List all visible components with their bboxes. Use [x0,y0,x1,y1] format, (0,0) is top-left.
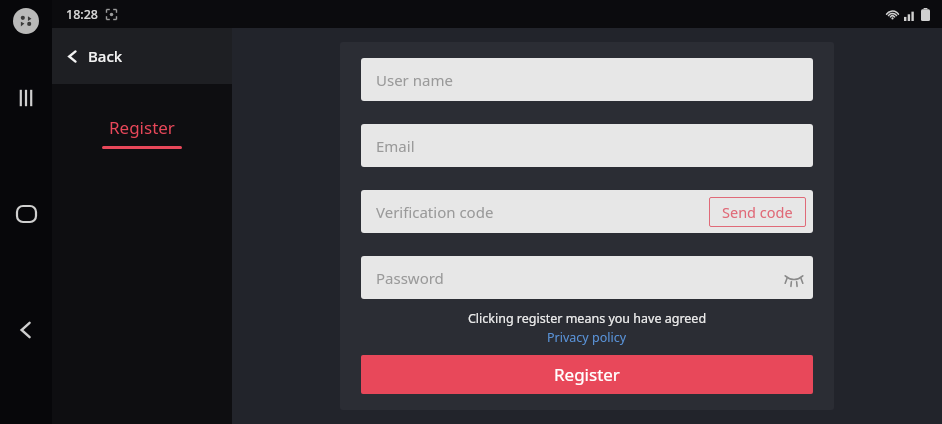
button[interactable]: Send code [709,197,806,227]
button[interactable]: Back [4,308,48,352]
staticText: Verification code [376,202,709,222]
staticText: Clicking register means you have agreed [361,310,813,327]
button[interactable]: Verification code [361,190,813,233]
staticText: Register [109,116,175,139]
staticText: Register [554,363,620,386]
button[interactable]: Register [52,116,232,149]
staticText: Password [376,268,775,288]
button[interactable]: Game launcher [13,8,39,34]
staticText: 18:28 [66,6,99,23]
button[interactable]: Register [361,355,813,394]
button[interactable]: Recents [4,76,48,120]
button[interactable]: Show password [775,259,813,297]
button[interactable]: Privacy policy [547,329,627,346]
button[interactable]: Back [52,28,232,84]
button[interactable]: User name [361,58,813,101]
staticText: Back [88,46,123,66]
button[interactable]: Email [361,124,813,167]
staticText: Email [376,136,813,156]
staticText: User name [376,70,813,90]
staticText: Send code [722,202,793,222]
button[interactable]: Home [4,192,48,236]
button[interactable]: Password [361,256,813,299]
